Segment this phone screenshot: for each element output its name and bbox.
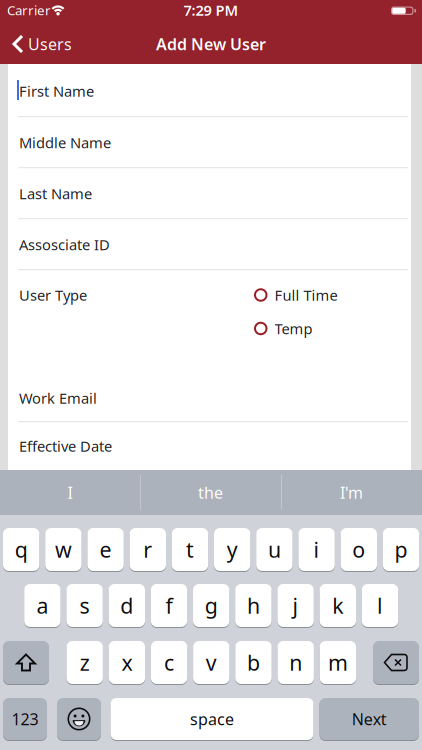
staticText: space xyxy=(190,708,234,730)
button[interactable]: f xyxy=(151,583,187,627)
staticText: Middle Name xyxy=(19,133,111,152)
staticText: n xyxy=(289,648,302,677)
staticText: a xyxy=(36,591,48,620)
staticText: Effective Date xyxy=(19,436,112,456)
staticText: m xyxy=(328,648,348,677)
button[interactable]: y xyxy=(214,527,250,571)
staticText: w xyxy=(55,535,72,564)
staticText: 7:29 PM xyxy=(183,0,238,20)
button[interactable]: z xyxy=(66,640,103,684)
button[interactable]: e xyxy=(87,527,124,571)
button[interactable]: p xyxy=(383,527,419,571)
staticText: k xyxy=(332,591,343,620)
button[interactable]: d xyxy=(109,583,145,627)
button[interactable]: o xyxy=(341,527,377,571)
button[interactable]: x xyxy=(109,640,145,684)
staticText: r xyxy=(143,535,152,564)
button[interactable]: Emoji xyxy=(57,697,101,740)
button[interactable]: Middle Name xyxy=(19,118,403,166)
button[interactable]: k xyxy=(320,583,356,627)
staticText: the xyxy=(198,482,223,503)
button[interactable]: l xyxy=(362,583,398,627)
button[interactable]: Full Time xyxy=(254,283,374,307)
staticText: Work Email xyxy=(19,388,97,408)
staticText: o xyxy=(352,535,365,564)
button[interactable]: I'm xyxy=(282,470,421,515)
button[interactable]: u xyxy=(256,527,293,571)
staticText: e xyxy=(100,535,112,564)
staticText: f xyxy=(165,591,172,620)
staticText: x xyxy=(121,648,132,677)
button[interactable]: w xyxy=(45,527,82,571)
staticText: c xyxy=(164,648,174,677)
staticText: s xyxy=(80,591,90,620)
staticText: t xyxy=(186,535,194,564)
staticText: 123 xyxy=(11,708,38,730)
staticText: g xyxy=(205,591,218,620)
button[interactable]: space xyxy=(110,697,313,740)
staticText: h xyxy=(247,591,260,620)
button[interactable]: h xyxy=(235,583,272,627)
button[interactable]: Effective Date xyxy=(19,422,403,470)
staticText: Carrier xyxy=(7,1,51,19)
button[interactable]: Last Name xyxy=(19,169,403,217)
staticText: I xyxy=(67,482,72,503)
button[interactable]: n xyxy=(277,640,314,684)
button[interactable]: Work Email xyxy=(19,374,403,422)
button[interactable]: j xyxy=(277,583,314,627)
staticText: y xyxy=(227,535,238,564)
button[interactable]: g xyxy=(193,583,229,627)
staticText: Temp xyxy=(274,319,312,338)
button[interactable]: v xyxy=(193,640,229,684)
button[interactable]: the xyxy=(141,470,280,515)
button[interactable]: r xyxy=(130,527,166,571)
button[interactable]: q xyxy=(3,527,39,571)
button[interactable]: m xyxy=(320,640,356,684)
staticText: First Name xyxy=(19,81,94,101)
staticText: z xyxy=(80,648,90,677)
staticText: Users xyxy=(28,33,72,55)
staticText: d xyxy=(120,591,133,620)
button[interactable]: Shift xyxy=(3,640,49,684)
staticText: q xyxy=(15,535,28,564)
button[interactable]: b xyxy=(235,640,272,684)
button[interactable]: First Name xyxy=(19,67,403,115)
staticText: I'm xyxy=(340,482,363,503)
button[interactable]: I xyxy=(0,470,139,515)
button[interactable]: i xyxy=(298,527,335,571)
staticText: j xyxy=(293,591,299,620)
staticText: v xyxy=(206,648,217,677)
staticText: Add New User xyxy=(156,33,266,55)
staticText: b xyxy=(247,648,260,677)
button[interactable]: a xyxy=(24,583,61,627)
staticText: p xyxy=(394,535,407,564)
staticText: u xyxy=(268,535,281,564)
button[interactable]: c xyxy=(151,640,187,684)
button[interactable]: Back xyxy=(12,32,96,56)
staticText: Assosciate ID xyxy=(19,235,110,254)
button[interactable]: Numbers xyxy=(3,697,47,740)
button[interactable]: Temp xyxy=(254,316,374,340)
button[interactable]: Next xyxy=(319,697,419,740)
staticText: l xyxy=(377,591,383,620)
staticText: User Type xyxy=(19,285,87,305)
staticText: Next xyxy=(352,708,387,730)
button[interactable]: s xyxy=(66,583,103,627)
staticText: i xyxy=(314,535,320,564)
button[interactable]: Assosciate ID xyxy=(19,220,403,268)
button[interactable]: t xyxy=(172,527,208,571)
staticText: Full Time xyxy=(274,285,337,305)
button[interactable]: Delete xyxy=(373,640,419,684)
staticText: Last Name xyxy=(19,184,92,203)
